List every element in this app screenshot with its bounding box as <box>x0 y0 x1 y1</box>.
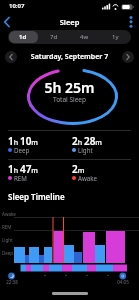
button[interactable]: 4w <box>69 30 100 44</box>
button[interactable]: 7d <box>38 30 69 44</box>
staticText: 22:38 <box>5 279 19 285</box>
button[interactable] <box>122 14 139 30</box>
staticText: Deep <box>2 250 14 256</box>
staticText: Saturday, September 7 <box>0 52 139 62</box>
staticText: Light <box>78 146 93 154</box>
staticText: 1d <box>19 33 27 41</box>
staticText: 4w <box>80 33 89 41</box>
staticText: Awake <box>78 174 98 182</box>
staticText: 10:07 <box>9 2 25 10</box>
button[interactable]: 2h 28m <box>72 134 130 158</box>
staticText: 1y <box>112 33 119 41</box>
staticText: 7d <box>50 33 58 41</box>
button[interactable]: 1h 47m <box>8 162 66 186</box>
staticText: 1h 10m <box>8 134 38 148</box>
button[interactable] <box>5 51 17 63</box>
staticText: Total Sleep <box>0 95 139 104</box>
staticText: Light <box>2 237 13 243</box>
staticText: Deep <box>14 146 30 154</box>
button[interactable] <box>122 51 134 63</box>
staticText: Sleep <box>0 17 139 27</box>
staticText: 2m <box>72 162 85 176</box>
staticText: REM <box>14 174 27 182</box>
staticText: Awake <box>2 211 16 217</box>
staticText: 5h 25m <box>0 78 139 97</box>
button[interactable] <box>0 14 22 30</box>
staticText: 2h 28m <box>72 134 102 148</box>
button[interactable]: 1d <box>8 30 38 44</box>
staticText: REM <box>2 224 12 230</box>
button[interactable]: 1h 10m <box>8 134 66 158</box>
button[interactable]: 1y <box>100 30 131 44</box>
staticText: 04:05 <box>116 279 130 285</box>
staticText: Sleep Timeline <box>8 191 65 202</box>
button[interactable]: 2m <box>72 162 130 186</box>
staticText: 1h 47m <box>8 162 38 176</box>
